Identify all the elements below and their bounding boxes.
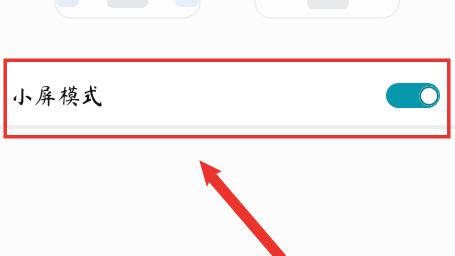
button[interactable]	[54, 0, 201, 19]
button[interactable]: Toggle small screen mode	[386, 83, 440, 108]
staticText: 小屏模式	[10, 84, 105, 107]
button[interactable]: 小屏模式	[0, 60, 455, 131]
button[interactable]	[254, 0, 400, 19]
